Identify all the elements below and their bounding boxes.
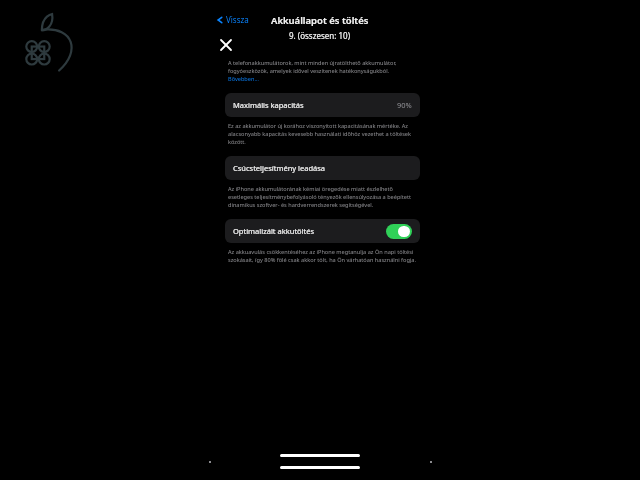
staticText: Az akkuavulás csökkentéséhez az iPhone m… (228, 248, 418, 264)
staticText: A telefonakkumulátorok, mint minden újra… (228, 59, 418, 83)
button[interactable]: Optimalizált akkutöltés (225, 219, 420, 243)
staticText: Ez az akkumulátor új korához viszonyítot… (228, 122, 418, 146)
button[interactable]: Vissza (216, 14, 249, 25)
button[interactable]: Bezárás (218, 37, 234, 53)
staticText: Csúcsteljesítmény leadása (233, 163, 326, 173)
button[interactable]: Maximális kapacitás (225, 93, 420, 117)
staticText: Akkuállapot és töltés (271, 14, 369, 27)
staticText: 90% (397, 100, 412, 110)
button[interactable]: Csúcsteljesítmény leadása (225, 156, 420, 180)
staticText: 9. (összesen: 10) (289, 30, 351, 41)
staticText: Vissza (226, 14, 249, 25)
staticText: Optimalizált akkutöltés (233, 226, 315, 236)
button[interactable]: Optimalizált akkutöltés kapcsoló (386, 224, 412, 239)
staticText: Maximális kapacitás (233, 100, 304, 110)
staticText: Az iPhone akkumulátorának kémiai öregedé… (228, 185, 418, 209)
